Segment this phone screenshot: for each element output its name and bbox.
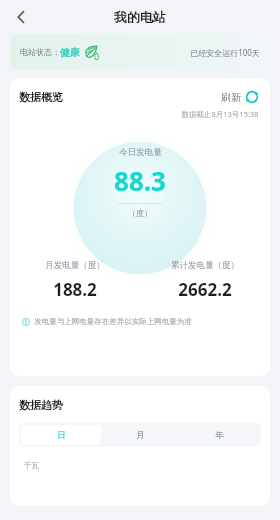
button[interactable]: 日 — [21, 425, 101, 445]
staticText: 累计发电量（度） — [171, 260, 239, 271]
staticText: 日 — [57, 430, 66, 441]
button[interactable]: 月 — [101, 425, 180, 445]
button[interactable]: 刷新 — [219, 88, 261, 106]
staticText: 88.3 — [114, 163, 166, 198]
staticText: 健康 — [60, 46, 80, 59]
staticText: 2662.2 — [178, 278, 232, 301]
staticText: 电站状态： — [20, 47, 60, 57]
staticText: 已经安全运行100天 — [190, 47, 260, 58]
staticText: 发电量与上网电量存在差异以实际上网电量为准 — [34, 317, 192, 326]
button[interactable]: 累计发电量（度） — [140, 260, 270, 301]
staticText: 月 — [136, 430, 145, 441]
staticText: 刷新 — [221, 91, 241, 104]
staticText: 数据概览 — [19, 90, 63, 104]
staticText: 今日发电量 — [119, 147, 162, 158]
staticText: 年 — [215, 430, 224, 441]
other: Refresh — [245, 90, 259, 104]
staticText: 188.2 — [53, 278, 97, 301]
staticText: 我的电站 — [114, 9, 166, 25]
staticText: 数据趋势 — [19, 398, 63, 412]
staticText: 月发电量（度） — [45, 260, 105, 271]
staticText: 千瓦 — [24, 461, 39, 470]
button[interactable]: 电站状态： — [10, 34, 270, 70]
button[interactable]: 年 — [180, 425, 259, 445]
staticText: 数据截止8月13号15:38 — [181, 109, 259, 119]
button[interactable]: 月发电量（度） — [10, 260, 140, 301]
staticText: （度） — [128, 208, 152, 218]
button[interactable]: Back — [6, 2, 36, 32]
